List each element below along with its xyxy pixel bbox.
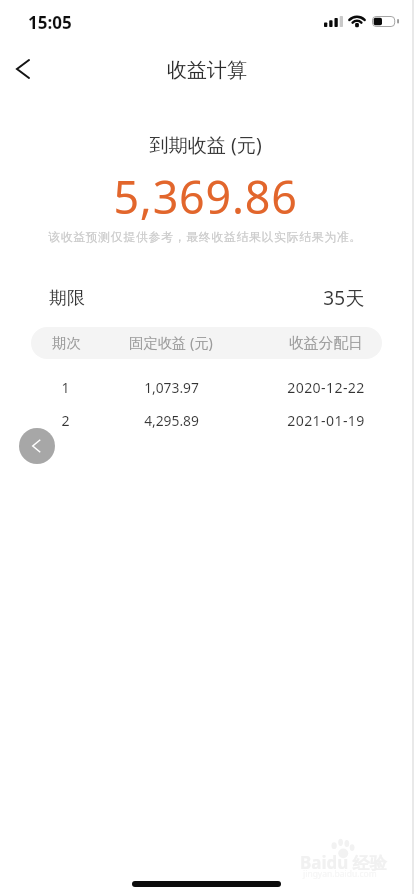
button[interactable]: Back bbox=[0, 44, 48, 96]
staticText: 1 bbox=[61, 378, 70, 397]
staticText: 35天 bbox=[323, 285, 365, 311]
button[interactable]: Back bbox=[19, 428, 55, 464]
staticText: 5,369.86 bbox=[113, 166, 298, 227]
staticText: 期次 bbox=[52, 334, 81, 352]
staticText: 收益分配日 bbox=[289, 334, 363, 353]
staticText: 收益计算 bbox=[167, 58, 247, 83]
staticText: 1,073.97 bbox=[144, 378, 199, 397]
staticText: 4,295.89 bbox=[144, 411, 199, 430]
staticText: 2021-01-19 bbox=[287, 411, 365, 430]
staticText: 固定收益 (元) bbox=[129, 333, 213, 353]
staticText: 2020-12-22 bbox=[287, 378, 365, 397]
staticText: 2 bbox=[61, 411, 70, 430]
staticText: jingyan.baidu.com bbox=[303, 868, 377, 880]
staticText: Baidu 经验 bbox=[300, 851, 387, 874]
staticText: 15:05 bbox=[28, 11, 72, 34]
staticText: 期限 bbox=[49, 287, 85, 310]
staticText: 到期收益 (元) bbox=[149, 131, 262, 157]
staticText: 该收益预测仅提供参考，最终收益结果以实际结果为准。 bbox=[48, 230, 362, 245]
